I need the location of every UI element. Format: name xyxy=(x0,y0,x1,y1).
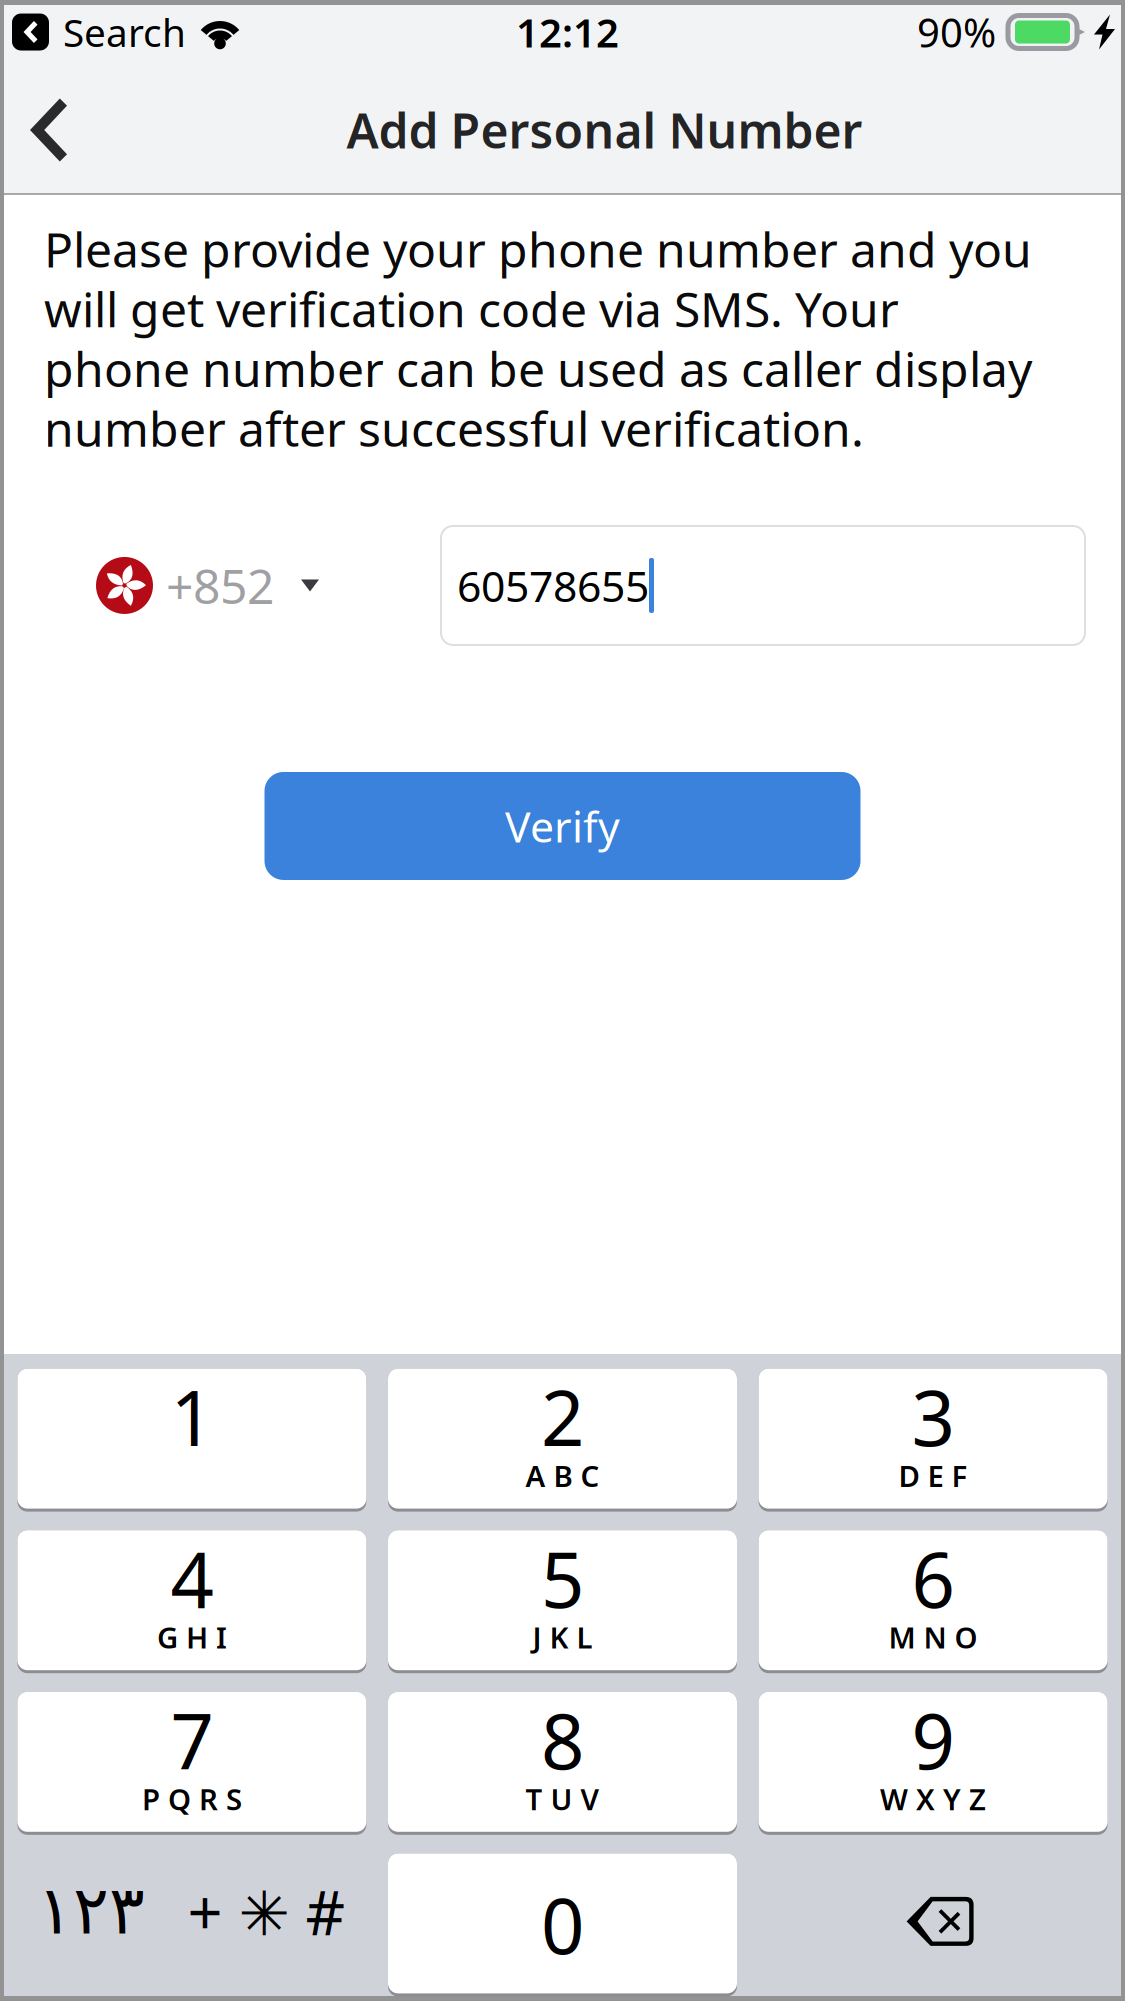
staticText: J K L xyxy=(532,1618,592,1657)
staticText: 0 xyxy=(541,1874,584,1975)
button[interactable]: 2 xyxy=(388,1369,737,1509)
button[interactable]: + ✳ # xyxy=(192,1853,366,1993)
button[interactable]: 1 xyxy=(17,1369,366,1509)
staticText: 7 xyxy=(170,1689,213,1790)
staticText: A B C xyxy=(525,1456,599,1495)
staticText: 12:12 xyxy=(516,5,619,58)
staticText: T U V xyxy=(525,1779,599,1818)
button[interactable]: Search xyxy=(12,6,186,58)
staticText: G H I xyxy=(157,1618,227,1657)
staticText: 8 xyxy=(541,1689,584,1790)
staticText: 2 xyxy=(541,1366,584,1467)
staticText: 1 xyxy=(170,1366,213,1467)
staticText: M N O xyxy=(889,1618,978,1657)
staticText: +852 xyxy=(166,554,274,617)
staticText: 4 xyxy=(170,1528,213,1629)
button[interactable]: 7 xyxy=(17,1692,366,1832)
button[interactable]: 5 xyxy=(388,1530,737,1670)
button[interactable]: Delete xyxy=(759,1853,1108,1993)
button[interactable]: 4 xyxy=(17,1530,366,1670)
staticText: 3 xyxy=(912,1366,955,1467)
button[interactable]: ١٢٣ xyxy=(17,1853,192,1993)
staticText: P Q R S xyxy=(142,1779,242,1818)
button[interactable]: 3 xyxy=(759,1369,1108,1509)
staticText: Add Personal Number xyxy=(346,98,862,162)
staticText: 5 xyxy=(541,1528,584,1629)
staticText: W X Y Z xyxy=(880,1779,986,1818)
staticText: 90% xyxy=(917,5,996,58)
staticText: Search xyxy=(63,6,186,58)
button[interactable]: Back xyxy=(4,67,93,193)
button[interactable]: Verify xyxy=(264,772,860,880)
staticText: 60578655 xyxy=(457,557,649,614)
staticText: ١٢٣ xyxy=(37,1873,145,1948)
button[interactable]: 0 xyxy=(388,1853,737,1993)
button[interactable]: 8 xyxy=(388,1692,737,1832)
button[interactable]: 9 xyxy=(759,1692,1108,1832)
staticText: 9 xyxy=(912,1689,955,1790)
staticText: 6 xyxy=(912,1528,955,1629)
staticText: Please provide your phone number and you… xyxy=(44,217,1032,460)
staticText: + ✳ # xyxy=(187,1871,345,1952)
staticText: D E F xyxy=(899,1456,968,1495)
staticText: Verify xyxy=(505,798,620,854)
button[interactable]: +852 xyxy=(96,554,319,617)
button[interactable]: 6 xyxy=(759,1530,1108,1670)
